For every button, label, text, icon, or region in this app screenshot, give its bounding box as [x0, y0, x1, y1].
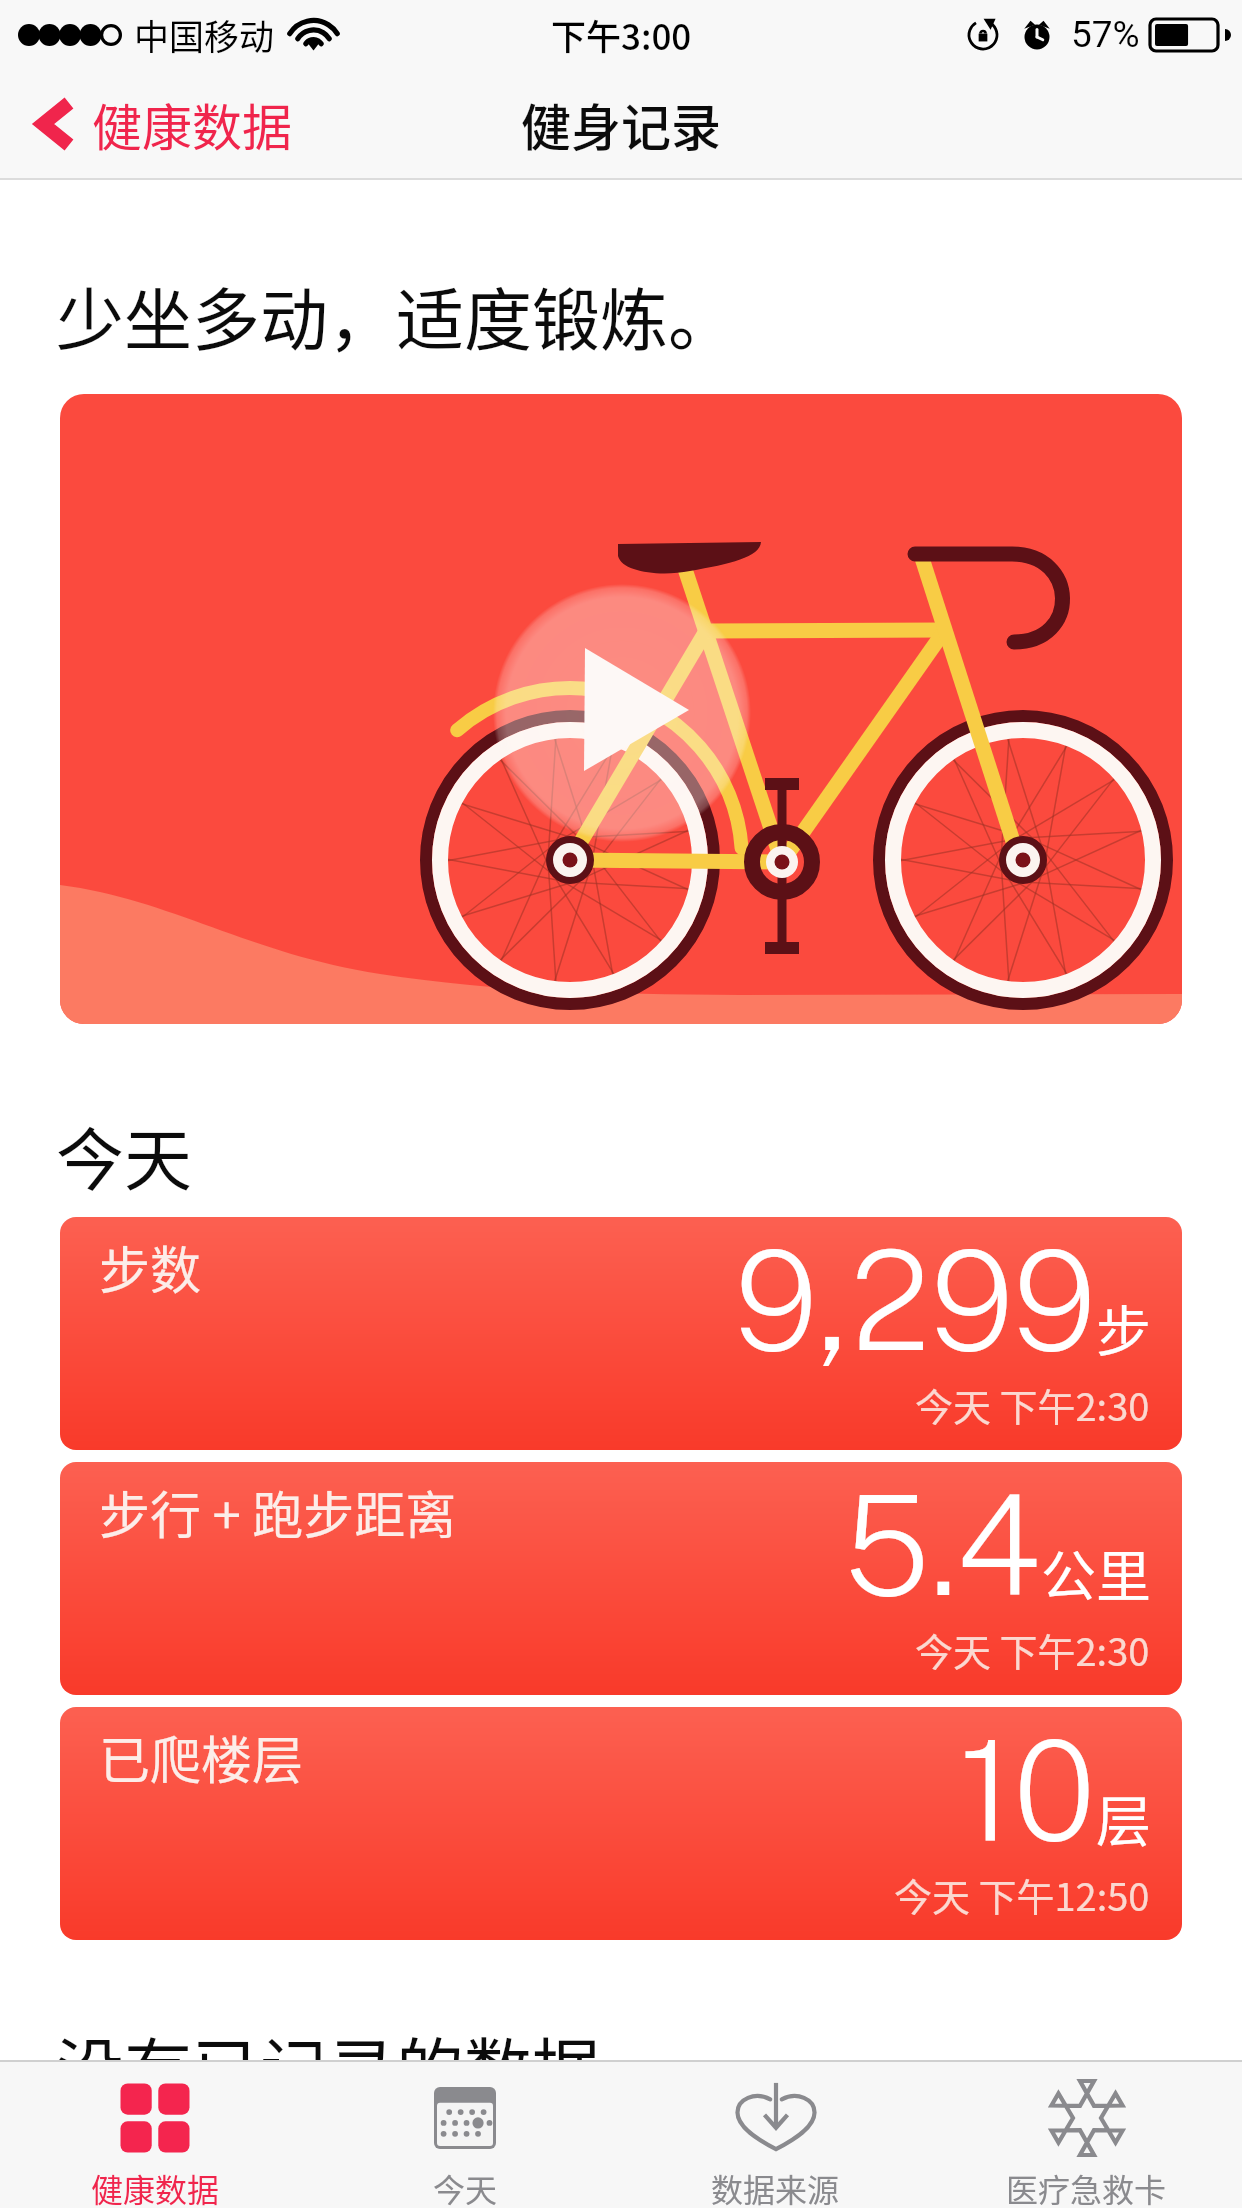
button[interactable]: 数据来源	[620, 2062, 931, 2208]
staticText: 健身记录	[521, 88, 721, 160]
staticText: 10	[959, 1709, 1096, 1871]
staticText: 少坐多动，适度锻炼。	[56, 266, 737, 364]
staticText: 公里	[1041, 1532, 1152, 1612]
staticText: 今天 下午2:30	[915, 1377, 1150, 1432]
staticText: 健康数据	[92, 88, 292, 160]
staticText: 中国移动	[134, 9, 275, 60]
staticText: 步数	[99, 1230, 202, 1304]
button[interactable]: 已爬楼层	[60, 1707, 1182, 1940]
staticText: 没有已记录的数据	[56, 2016, 601, 2114]
staticText: 步	[1096, 1287, 1152, 1367]
staticText: 今天	[56, 1106, 193, 1204]
staticText: 今天 下午2:30	[915, 1622, 1150, 1677]
staticText: 9,299	[734, 1219, 1096, 1381]
button[interactable]: 今天	[310, 2062, 620, 2208]
button[interactable]: 健康数据	[0, 68, 308, 180]
staticText: 步行 + 跑步距离	[99, 1475, 457, 1549]
button[interactable]: 步行 + 跑步距离	[60, 1462, 1182, 1695]
staticText: 今天	[433, 2165, 498, 2208]
staticText: 医疗急救卡	[1006, 2165, 1167, 2208]
staticText: 已爬楼层	[99, 1720, 304, 1794]
staticText: 健康数据	[91, 2165, 220, 2208]
staticText: 数据来源	[711, 2165, 840, 2208]
staticText: 5.4	[844, 1464, 1041, 1626]
staticText: 57%	[1071, 13, 1140, 56]
button[interactable]: Play workout video	[60, 394, 1182, 1024]
button[interactable]: 步数	[60, 1217, 1182, 1450]
button[interactable]: 健康数据	[0, 2062, 310, 2208]
staticText: 层	[1096, 1777, 1152, 1857]
staticText: 下午3:00	[551, 9, 692, 60]
staticText: 今天 下午12:50	[894, 1867, 1150, 1922]
button[interactable]: 医疗急救卡	[931, 2062, 1242, 2208]
